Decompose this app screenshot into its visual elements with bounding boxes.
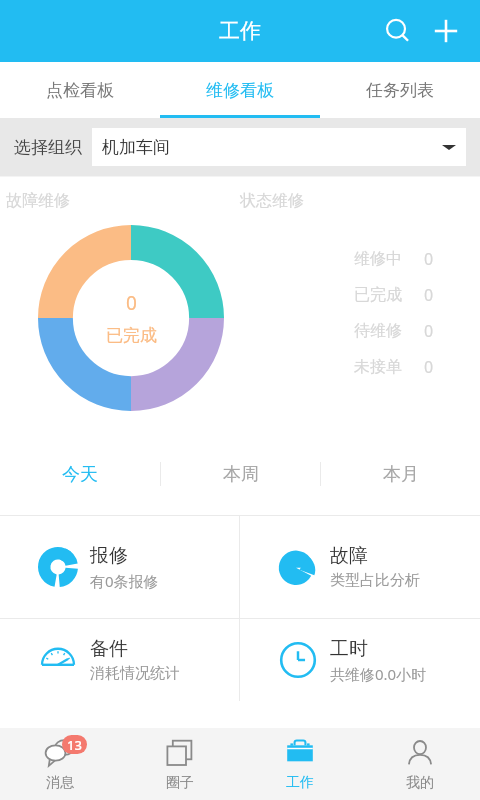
staticText: 消耗情况统计: [90, 664, 180, 683]
button[interactable]: 13: [0, 728, 120, 800]
button[interactable]: 任务列表: [320, 62, 480, 118]
button[interactable]: 机加车间: [92, 128, 466, 166]
button[interactable]: 故障: [240, 516, 480, 618]
staticText: 工作: [219, 18, 261, 44]
staticText: 点检看板: [46, 80, 114, 101]
button[interactable]: 工作: [240, 728, 360, 800]
staticText: 故障: [330, 544, 368, 568]
staticText: 0: [424, 248, 434, 270]
button[interactable]: 本周: [161, 433, 320, 515]
staticText: 待维修: [354, 321, 402, 341]
staticText: 任务列表: [366, 80, 434, 101]
button[interactable]: 今天: [0, 433, 160, 515]
staticText: 选择组织: [14, 137, 82, 158]
staticText: 有0条报修: [90, 571, 159, 591]
button[interactable]: Search: [374, 7, 422, 55]
staticText: 状态维修: [240, 191, 304, 211]
staticText: 0: [126, 290, 137, 316]
button[interactable]: 本月: [321, 433, 480, 515]
button[interactable]: 维修看板: [160, 62, 320, 118]
staticText: 故障维修: [6, 191, 70, 211]
button[interactable]: 我的: [360, 728, 480, 800]
button[interactable]: 报修: [0, 516, 239, 618]
staticText: 类型占比分析: [330, 571, 420, 590]
button[interactable]: 圈子: [120, 728, 240, 800]
staticText: 今天: [62, 463, 98, 486]
staticText: 0: [424, 284, 434, 306]
staticText: 13: [67, 736, 82, 754]
staticText: 消息: [46, 774, 74, 792]
button[interactable]: 工时: [240, 619, 480, 701]
staticText: 共维修0.0小时: [330, 664, 427, 684]
staticText: 圈子: [166, 774, 194, 792]
staticText: 报修: [90, 544, 128, 568]
staticText: 工时: [330, 637, 368, 661]
staticText: 0: [424, 356, 434, 378]
staticText: 本周: [223, 463, 259, 486]
button[interactable]: 备件: [0, 619, 239, 701]
staticText: 工作: [286, 774, 314, 792]
staticText: 已完成: [106, 325, 157, 346]
staticText: 未接单: [354, 357, 402, 377]
staticText: 0: [424, 320, 434, 342]
staticText: 备件: [90, 637, 128, 661]
staticText: 我的: [406, 774, 434, 792]
staticText: 已完成: [354, 285, 402, 305]
staticText: 维修中: [354, 249, 402, 269]
staticText: 维修看板: [206, 80, 274, 101]
button[interactable]: 点检看板: [0, 62, 160, 118]
staticText: 本月: [383, 463, 419, 486]
button[interactable]: Add: [422, 7, 470, 55]
staticText: 机加车间: [102, 137, 170, 158]
